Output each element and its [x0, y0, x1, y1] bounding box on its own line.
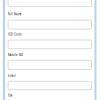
button[interactable]	[8, 60, 91, 69]
button[interactable]	[8, 81, 91, 90]
staticText: Sex	[8, 94, 12, 97]
button[interactable]	[8, 20, 91, 29]
button[interactable]	[8, 0, 91, 7]
staticText: Full Name	[8, 12, 22, 16]
staticText: Email	[8, 74, 16, 77]
button[interactable]	[8, 40, 91, 49]
staticText: Mobile NO	[8, 53, 23, 57]
staticText: ISD Code	[8, 33, 22, 36]
